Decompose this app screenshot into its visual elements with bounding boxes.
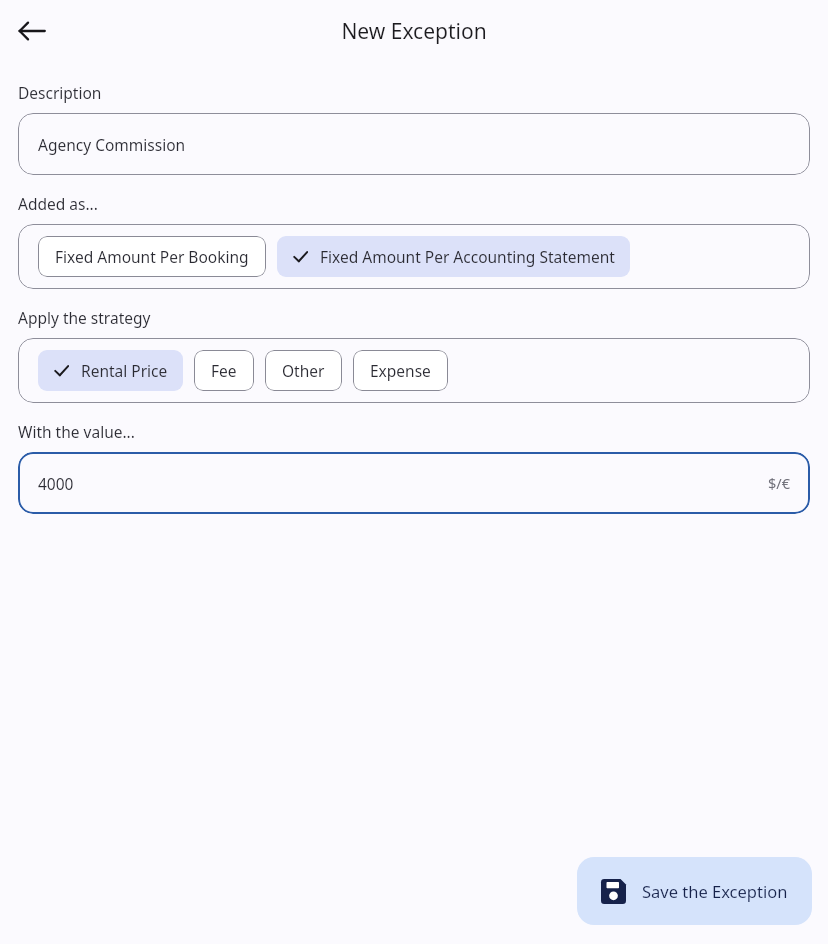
button[interactable]: Fixed Amount Per Booking: [38, 236, 266, 277]
button[interactable]: Save the Exception: [577, 857, 812, 925]
staticText: Apply the strategy: [18, 307, 151, 328]
staticText: Agency Commission: [38, 134, 186, 155]
staticText: New Exception: [341, 17, 487, 46]
staticText: Fixed Amount Per Accounting Statement: [320, 246, 615, 267]
staticText: Save the Exception: [642, 880, 788, 902]
button[interactable]: Fee: [194, 350, 254, 391]
button[interactable]: Agency Commission: [18, 113, 810, 175]
staticText: Fixed Amount Per Booking: [55, 246, 249, 267]
staticText: Rental Price: [81, 360, 168, 381]
staticText: Fee: [211, 360, 237, 381]
button[interactable]: Other: [265, 350, 342, 391]
button[interactable]: Fixed Amount Per Accounting Statement: [277, 236, 630, 277]
staticText: Expense: [370, 360, 431, 381]
staticText: $/€: [768, 473, 790, 493]
staticText: 4000: [38, 473, 74, 494]
button[interactable]: Rental Price: [38, 350, 183, 391]
button[interactable]: 4000: [18, 452, 810, 514]
staticText: Description: [18, 82, 102, 103]
staticText: Added as...: [18, 193, 98, 214]
button[interactable]: Back: [10, 9, 54, 53]
button[interactable]: Expense: [353, 350, 448, 391]
staticText: With the value...: [18, 421, 135, 442]
staticText: Other: [282, 360, 325, 381]
